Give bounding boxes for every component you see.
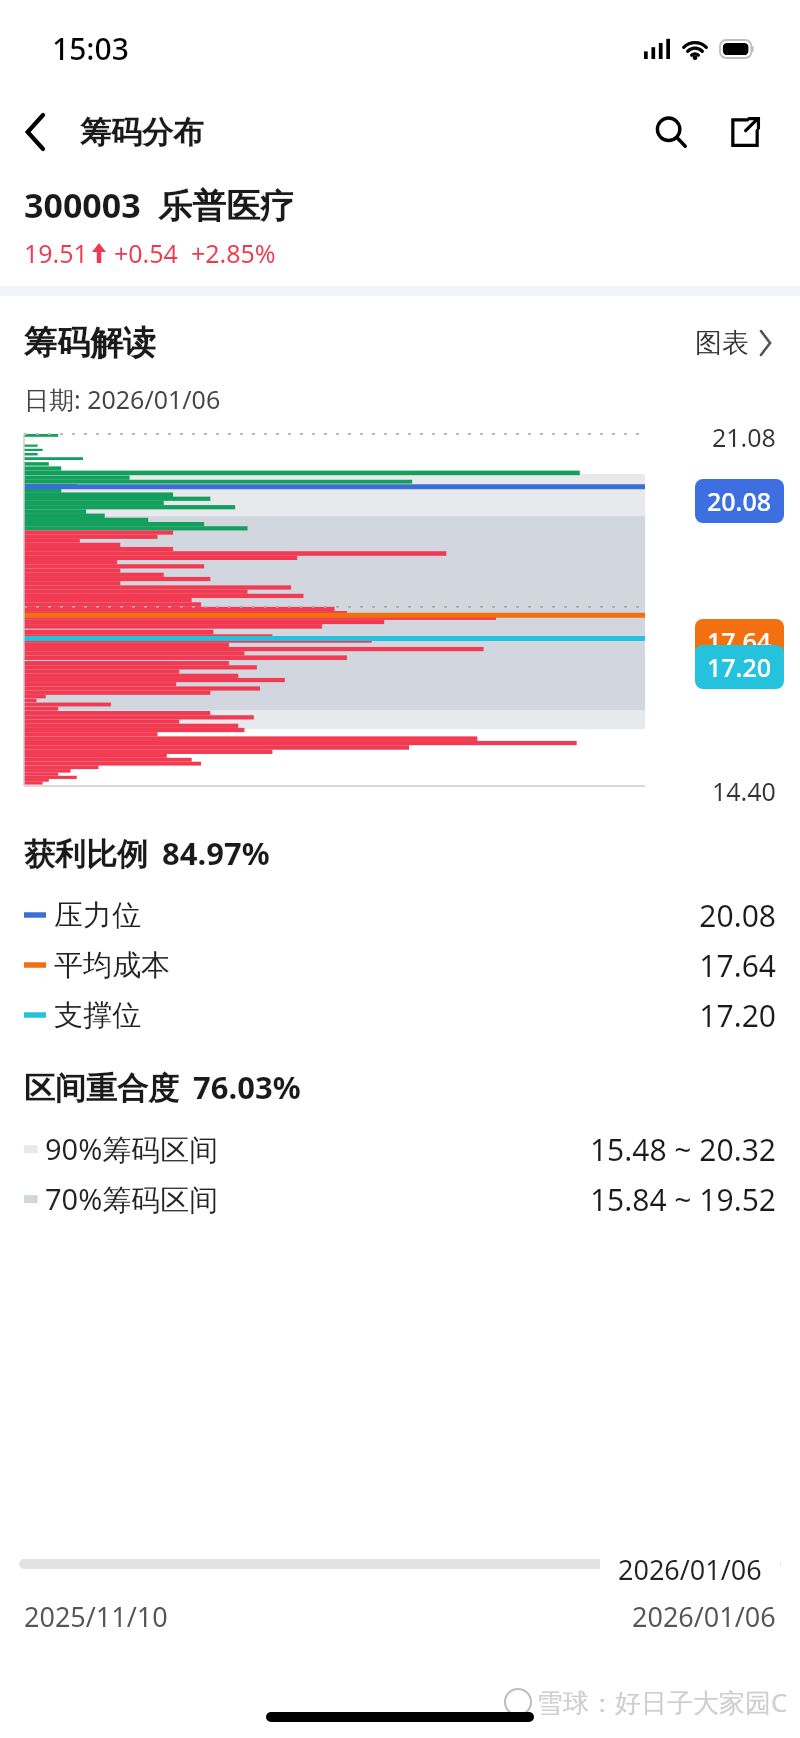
button[interactable]: Back <box>8 104 64 160</box>
button[interactable]: 图表 <box>691 322 776 364</box>
staticText: 支撑位 <box>54 997 141 1034</box>
staticText: 84.97% <box>162 832 270 874</box>
staticText: 17.20 <box>707 650 772 684</box>
staticText: 19.51 <box>24 236 88 270</box>
staticText: 14.40 <box>712 774 776 808</box>
staticText: 筹码分布 <box>80 113 204 152</box>
staticText: 区间重合度 <box>24 1069 179 1108</box>
staticText: 20.08 <box>707 484 772 518</box>
button[interactable]: 支撑位 <box>24 990 776 1040</box>
staticText: 日期: 2026/01/06 <box>24 382 221 416</box>
staticText: 17.20 <box>699 995 776 1036</box>
button[interactable]: 2026/01/06 <box>600 1541 780 1598</box>
staticText: 筹码解读 <box>24 322 156 364</box>
staticText: 15.48 ~ 20.32 <box>589 1129 776 1170</box>
staticText: 300003 乐普医疗 <box>24 182 295 228</box>
button[interactable]: 平均成本 <box>24 940 776 990</box>
staticText: 76.03% <box>193 1066 301 1108</box>
button[interactable]: Share <box>716 103 774 161</box>
button[interactable]: 70%筹码区间 <box>24 1174 776 1224</box>
staticText: 2026/01/06 <box>618 1551 762 1588</box>
button[interactable]: Search <box>642 103 700 161</box>
staticText: 17.64 <box>699 945 776 986</box>
staticText: 90%筹码区间 <box>45 1129 219 1169</box>
button[interactable]: 压力位 <box>24 890 776 940</box>
staticText: 雪球：好日子大家园C <box>537 1684 788 1720</box>
staticText: 获利比例 <box>24 835 148 874</box>
staticText: 压力位 <box>54 897 141 934</box>
staticText: 2026/01/06 <box>632 1598 776 1635</box>
staticText: 17.64 <box>707 624 772 658</box>
staticText: 21.08 <box>712 420 776 454</box>
staticText: 70%筹码区间 <box>45 1179 219 1219</box>
staticText: 平均成本 <box>54 947 170 984</box>
staticText: 15:03 <box>52 28 129 69</box>
staticText: 2025/11/10 <box>24 1598 168 1635</box>
staticText: 15.84 ~ 19.52 <box>589 1179 776 1220</box>
staticText: 20.08 <box>699 895 776 936</box>
button[interactable]: 90%筹码区间 <box>24 1124 776 1174</box>
staticText: +0.54 +2.85% <box>114 236 276 270</box>
staticText: 图表 <box>695 326 749 360</box>
